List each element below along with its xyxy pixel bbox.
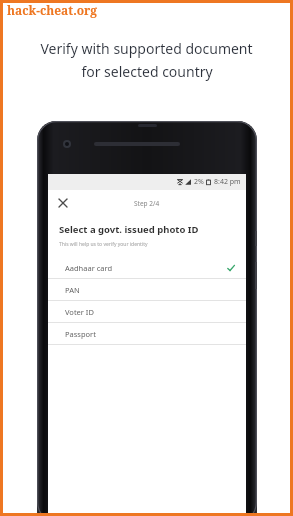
staticText: Passport bbox=[65, 329, 96, 339]
button[interactable]: Aadhaar card bbox=[48, 257, 246, 278]
button[interactable]: Close bbox=[53, 193, 73, 213]
button[interactable]: Voter ID bbox=[48, 301, 246, 322]
staticText: Voter ID bbox=[65, 307, 94, 317]
staticText: Step 2/4 bbox=[134, 199, 160, 208]
staticText: hack-cheat.org bbox=[7, 2, 98, 18]
button[interactable]: Passport bbox=[48, 323, 246, 344]
staticText: Aadhaar card bbox=[65, 263, 113, 273]
staticText: 8:42 pm bbox=[214, 177, 241, 187]
staticText: This will help us to verify your identit… bbox=[59, 241, 148, 248]
staticText: Select a govt. issued photo ID bbox=[59, 223, 199, 236]
button[interactable]: PAN bbox=[48, 279, 246, 300]
staticText: Verify with supported document bbox=[40, 39, 253, 58]
staticText: 2% bbox=[194, 177, 204, 187]
staticText: PAN bbox=[65, 285, 80, 295]
staticText: for selected country bbox=[81, 62, 213, 81]
